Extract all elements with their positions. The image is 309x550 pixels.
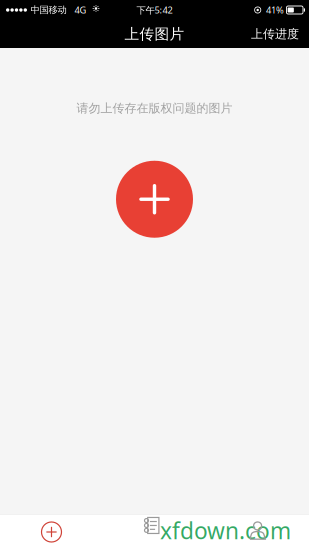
staticText: 4G [74, 4, 86, 16]
staticText: 中国移动 [30, 4, 66, 16]
staticText: 下午5:42 [136, 4, 172, 16]
button[interactable]: Add photo [116, 161, 193, 238]
staticText: 41% [266, 4, 284, 16]
staticText: 上传图片 [124, 25, 184, 43]
staticText: 上传进度 [251, 27, 299, 41]
button[interactable]: Add image [36, 519, 66, 545]
staticText: 请勿上传存在版权问题的图片 [76, 101, 232, 116]
staticText: xfdown.com [160, 515, 291, 545]
button[interactable]: 上传进度 [241, 20, 309, 48]
